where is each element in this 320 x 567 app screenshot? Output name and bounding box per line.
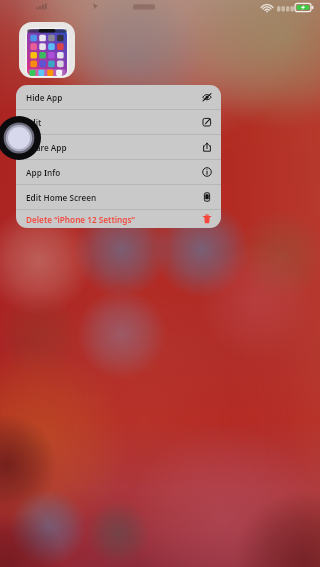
- staticText: Share App: [26, 142, 202, 153]
- staticText: Hide App: [26, 92, 202, 103]
- button[interactable]: Edit: [16, 110, 221, 134]
- staticText: Delete “iPhone 12 Settings”: [26, 214, 202, 225]
- button[interactable]: iPhone 12 Settings app icon: [19, 22, 75, 78]
- button[interactable]: App Info: [16, 160, 221, 184]
- button[interactable]: Share App: [16, 135, 221, 159]
- staticText: Edit Home Screen: [26, 192, 202, 203]
- staticText: App Info: [26, 167, 202, 178]
- button[interactable]: Edit Home Screen: [16, 185, 221, 209]
- staticText: Edit: [26, 117, 202, 128]
- button[interactable]: Hide App: [16, 85, 221, 109]
- button[interactable]: Delete “iPhone 12 Settings”: [16, 210, 221, 228]
